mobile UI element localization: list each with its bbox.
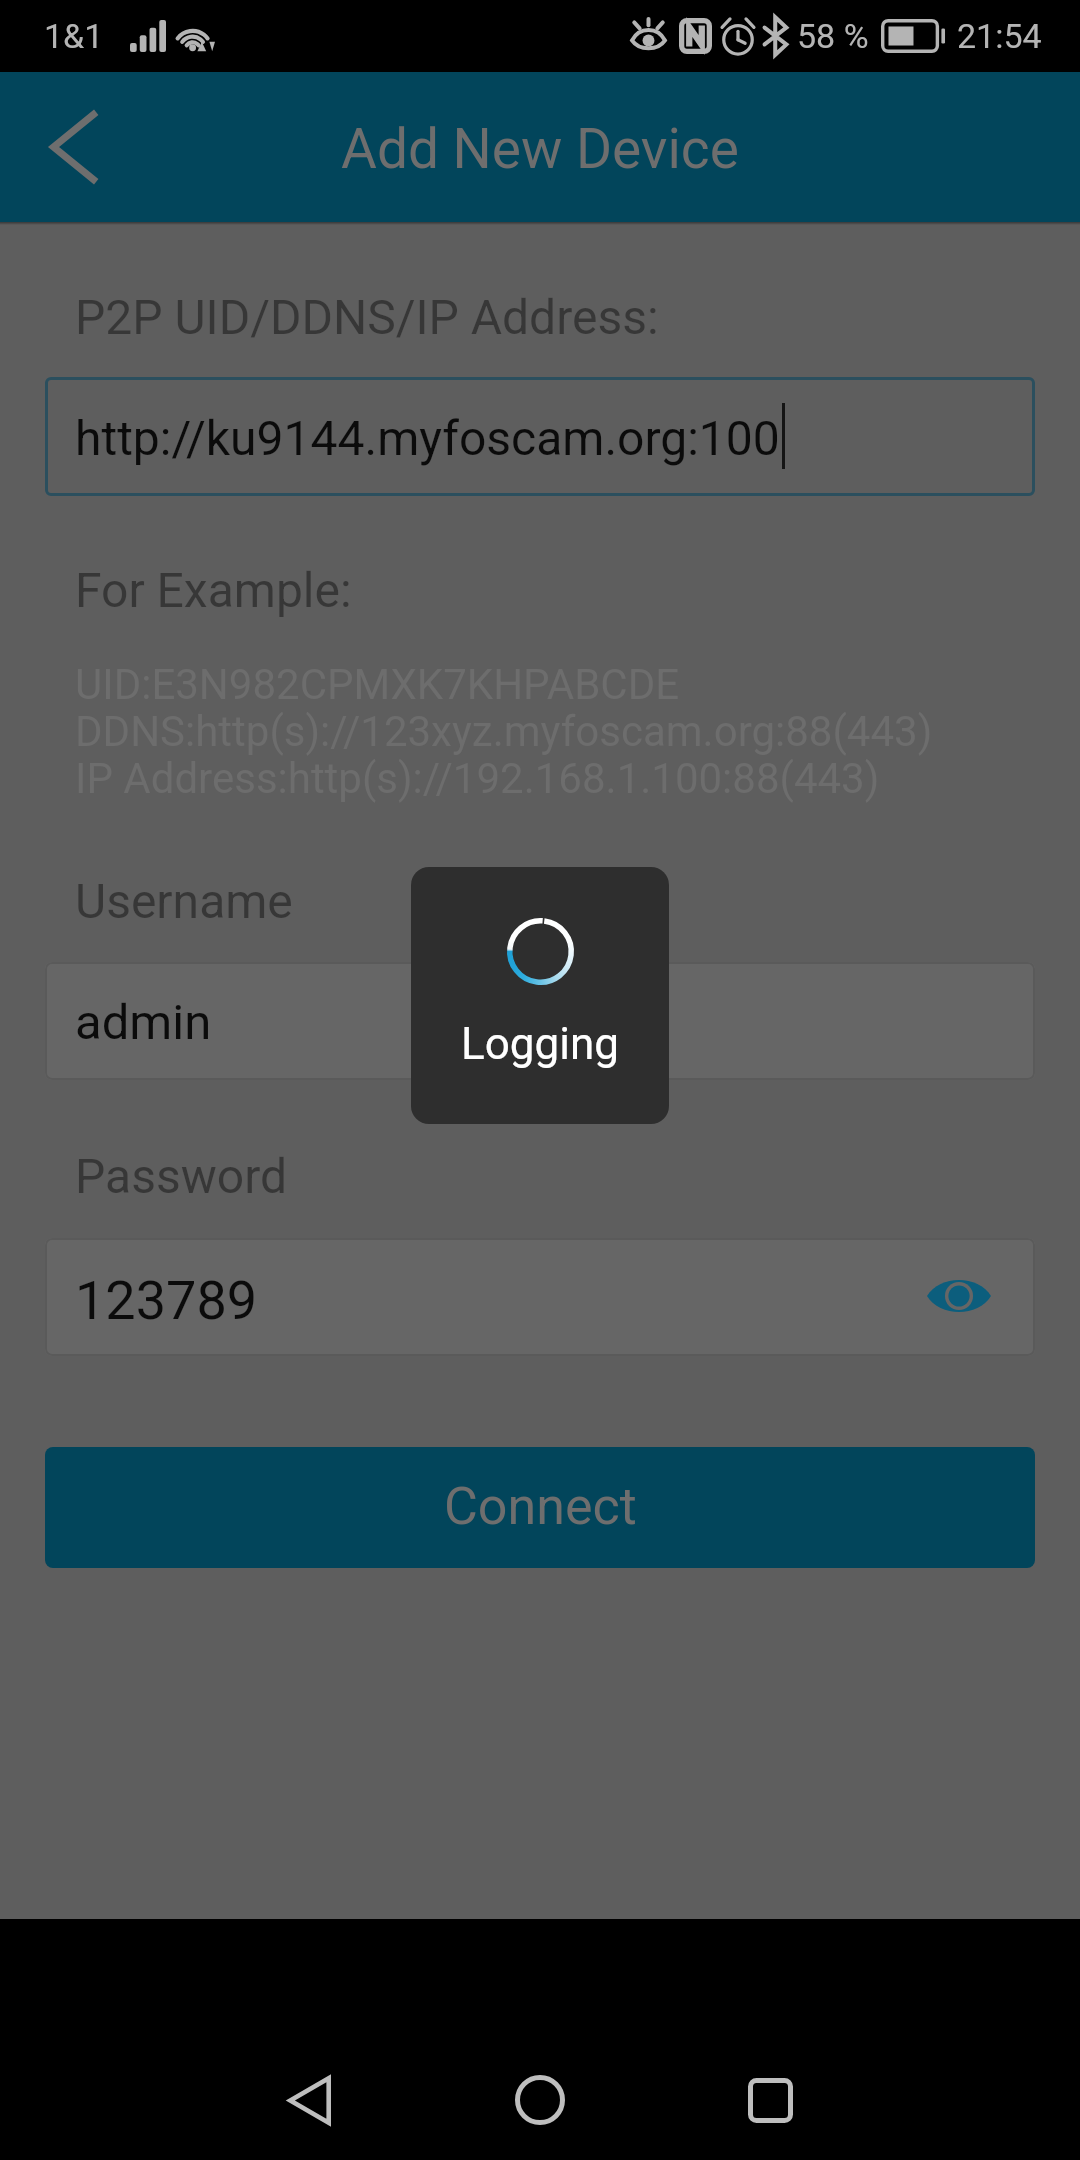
staticText: Username <box>75 873 293 929</box>
button[interactable]: Back <box>249 2040 369 2160</box>
button[interactable]: Show password <box>919 1256 999 1336</box>
staticText: 21:54 <box>957 16 1042 56</box>
staticText: 123789 <box>75 1269 258 1332</box>
button[interactable]: Back <box>0 72 148 222</box>
staticText: Connect <box>444 1476 637 1537</box>
staticText: IP Address:http(s)://192.168.1.100:88(44… <box>75 754 880 803</box>
staticText: Logging <box>461 1018 619 1070</box>
button[interactable]: admin <box>45 962 1035 1080</box>
button[interactable]: Recents <box>710 2040 830 2160</box>
staticText: 58 % <box>797 16 869 56</box>
staticText: http://ku9144.myfoscam.org:100 <box>75 410 780 466</box>
staticText: admin <box>75 994 212 1051</box>
staticText: For Example: <box>75 562 352 618</box>
button[interactable]: Logging <box>411 867 669 1124</box>
staticText: P2P UID/DDNS/IP Address: <box>75 289 659 345</box>
staticText: Password <box>75 1148 288 1204</box>
button[interactable]: Home <box>480 2040 600 2160</box>
staticText: UID:E3N982CPMXK7KHPABCDE <box>75 660 680 709</box>
button[interactable]: Connect <box>45 1447 1035 1568</box>
button[interactable]: http://ku9144.myfoscam.org:100 <box>45 377 1035 496</box>
staticText: 1&1 <box>44 16 104 56</box>
staticText: Add New Device <box>341 117 739 181</box>
staticText: DDNS:http(s)://123xyz.myfoscam.org:88(44… <box>75 707 933 756</box>
button[interactable]: 123789 <box>45 1238 1035 1356</box>
